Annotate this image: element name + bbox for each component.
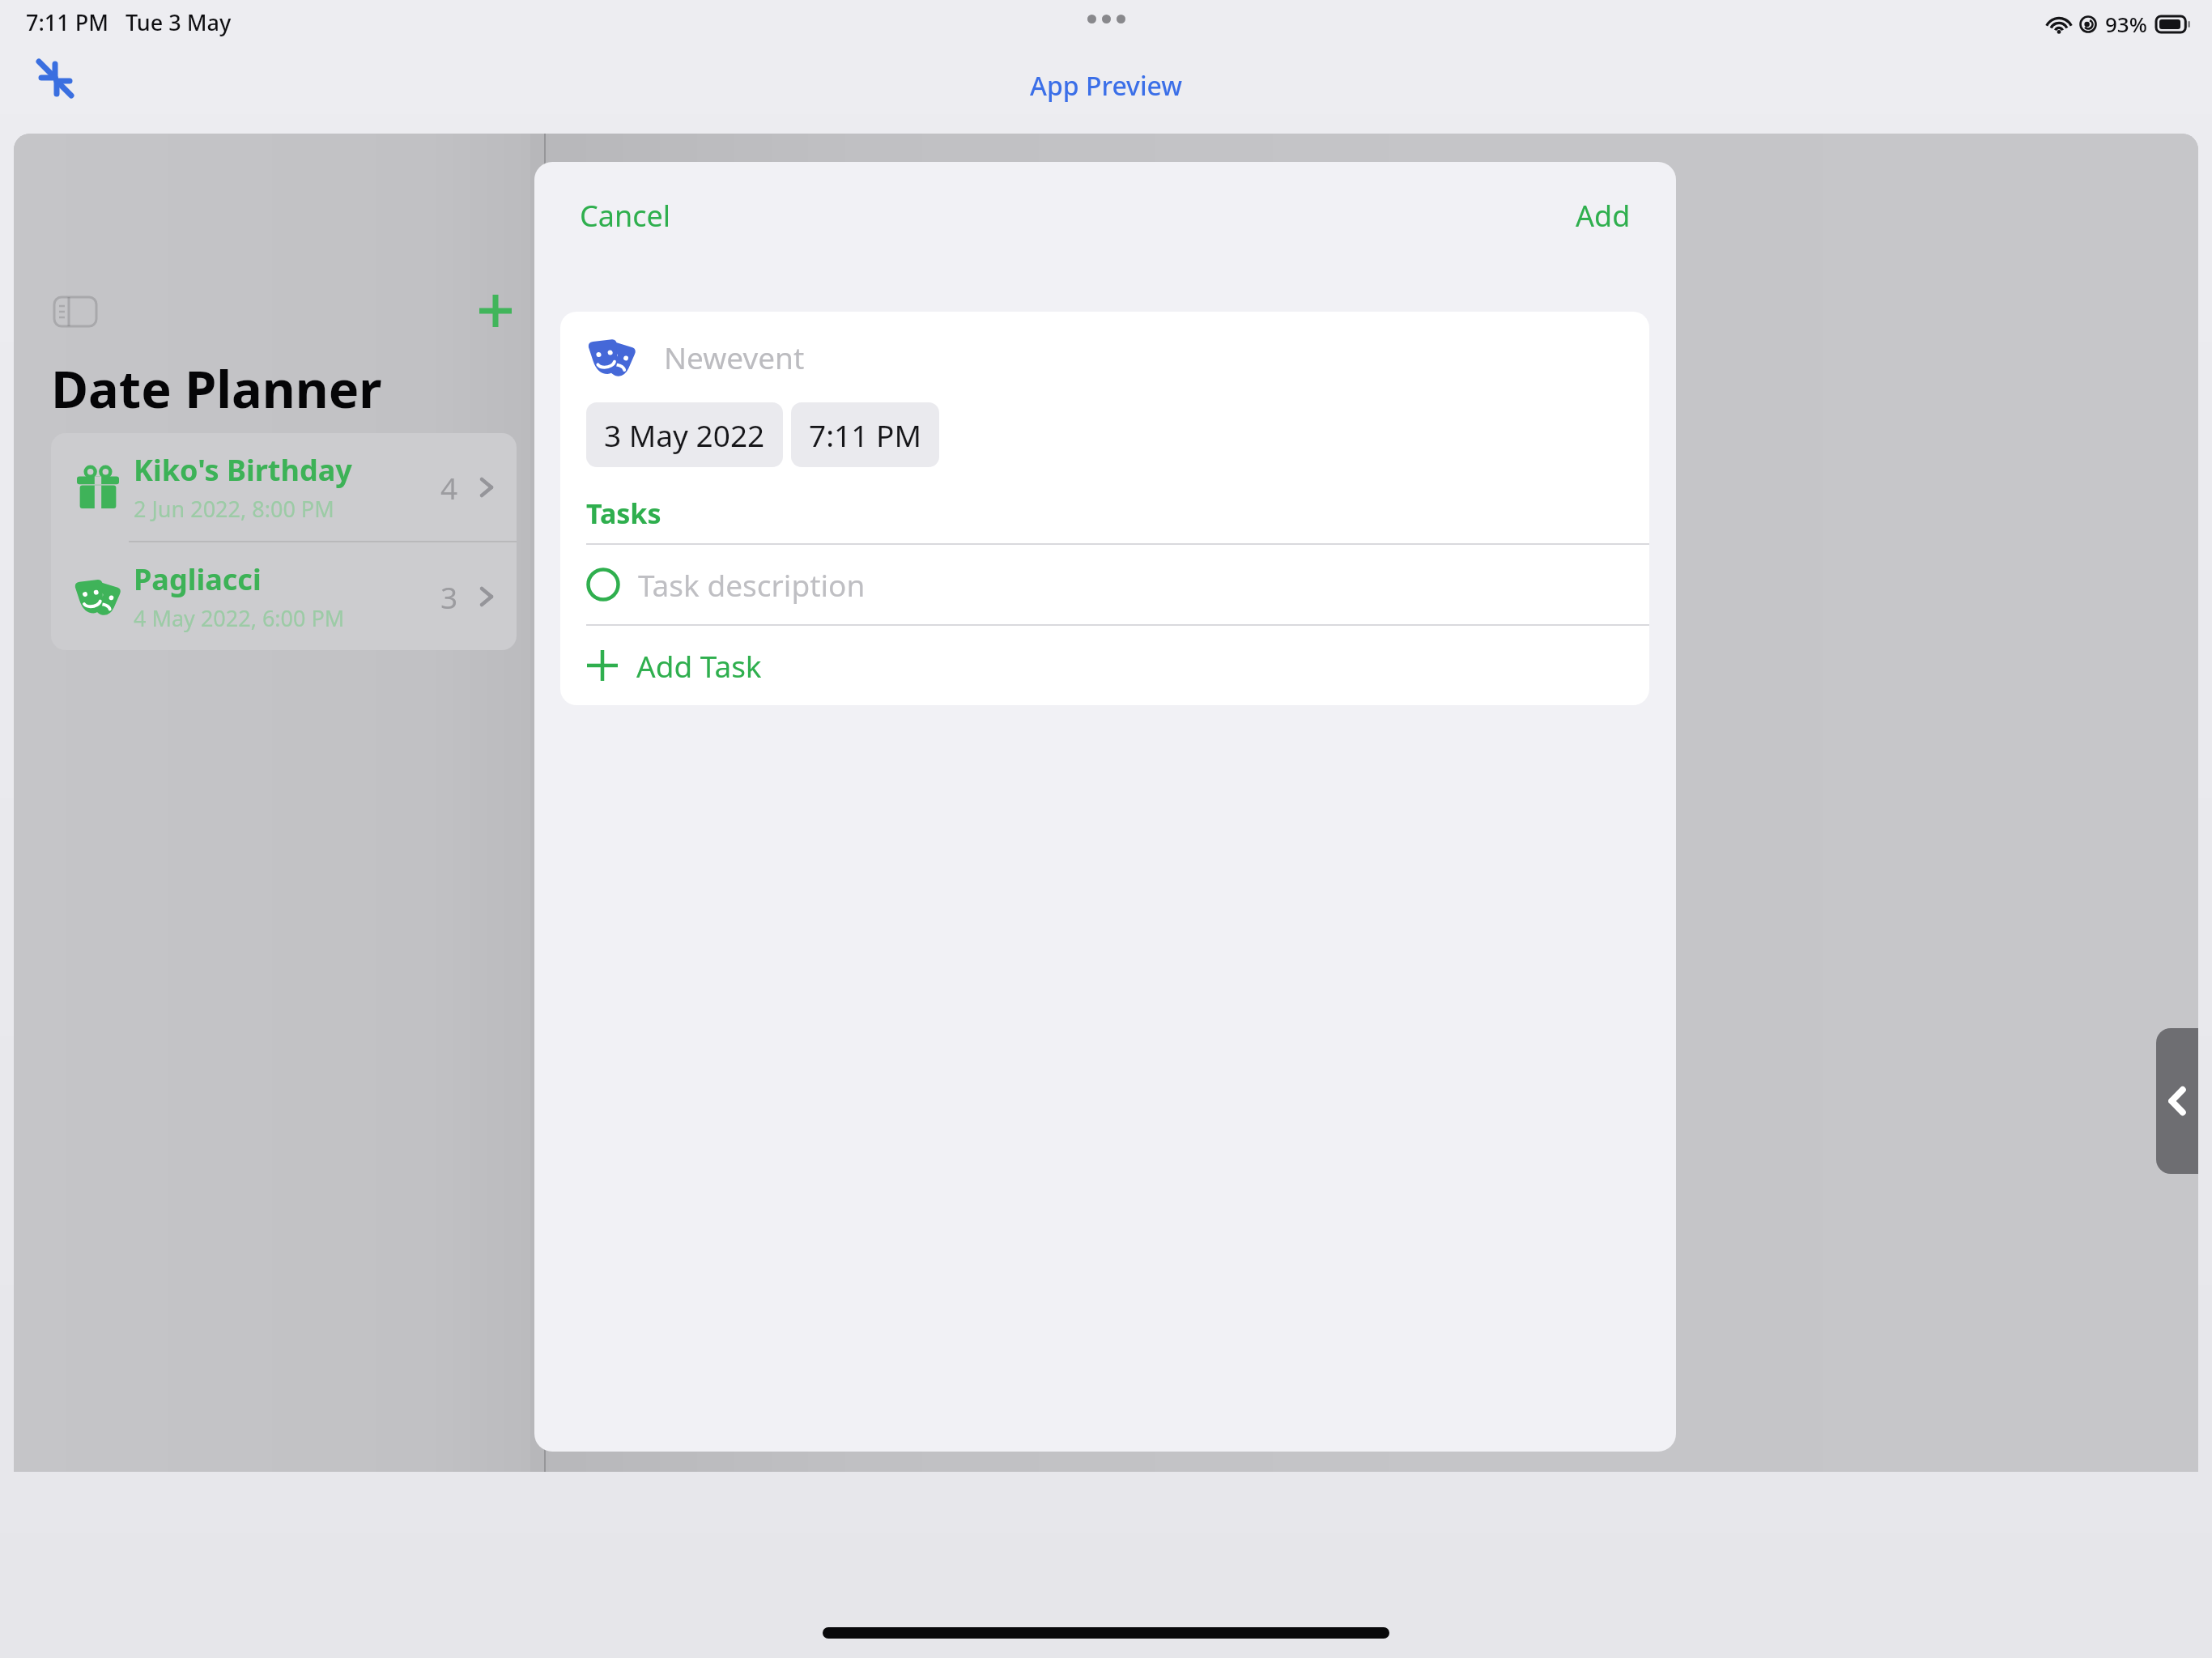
staticText: Cancel [580,196,671,236]
staticText: 7:11 PM Tue 3 May [26,7,232,37]
staticText: Task description [638,564,866,605]
staticText: 3 [440,576,458,617]
button[interactable]: Add [1564,185,1642,247]
staticText: 3 May 2022 [604,414,765,455]
staticText: Tasks [586,495,661,532]
button[interactable]: Show side panel [2156,1028,2198,1174]
staticText: Add [1576,196,1631,236]
staticText: 7:11 PM [809,414,921,455]
staticText: 2 Jun 2022, 8:00 PM [134,494,334,524]
staticText: App Preview [1030,68,1183,104]
button[interactable]: Newevent [560,312,1649,402]
staticText: Newevent [664,337,805,377]
staticText: 93% [2105,10,2147,38]
button[interactable]: Collapse preview [26,50,84,108]
staticText: 4 [440,467,458,508]
button[interactable]: 7:11 PM [791,402,939,467]
button[interactable]: Add Task [560,626,1649,705]
staticText: 4 May 2022, 6:00 PM [134,603,345,633]
staticText: Kiko's Birthday [134,450,352,490]
button[interactable]: Add event [469,284,522,338]
staticText: Add Task [636,645,762,686]
staticText: Pagliacci [134,559,262,599]
button[interactable]: App Preview [1020,63,1193,108]
button[interactable]: Pagliacci [51,542,517,650]
button[interactable]: Toggle sidebar [53,289,98,334]
staticText: Date Planner [51,354,382,423]
button[interactable]: 3 May 2022 [586,402,783,467]
button[interactable]: Kiko's Birthday [51,433,517,541]
button[interactable]: Cancel [568,185,683,247]
button[interactable]: Task description [560,545,1649,624]
